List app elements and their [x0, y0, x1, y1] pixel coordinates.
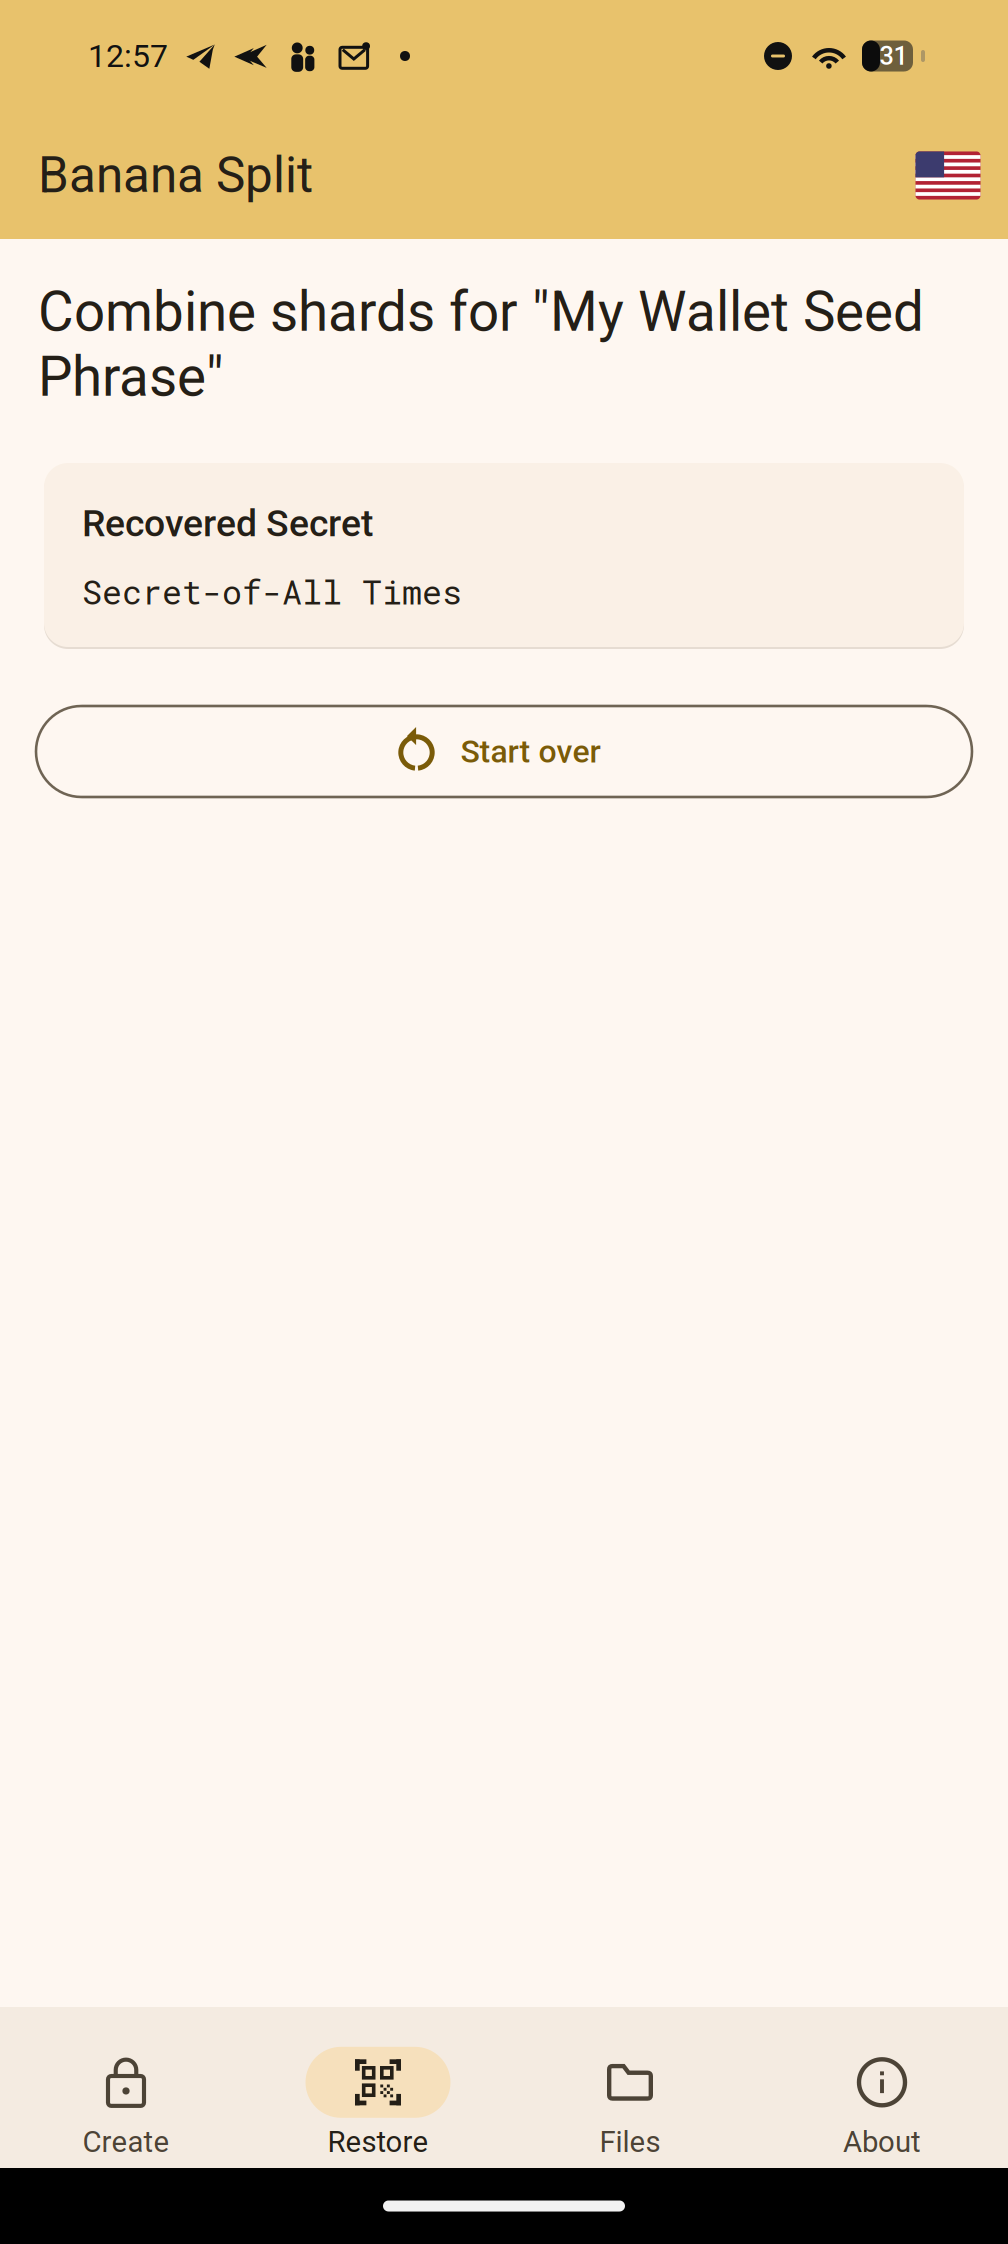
staticText: Restore: [327, 2125, 428, 2159]
staticText: Files: [599, 2125, 660, 2159]
button[interactable]: Create: [0, 2047, 252, 2163]
button[interactable]: Language: [911, 138, 985, 212]
button[interactable]: Restore: [252, 2047, 504, 2163]
staticText: Recovered Secret: [82, 502, 373, 545]
button[interactable]: About: [756, 2047, 1008, 2163]
button[interactable]: Files: [504, 2047, 756, 2163]
staticText: Create: [82, 2125, 169, 2159]
staticText: Combine shards for "My Wallet Seed: [38, 280, 924, 344]
button[interactable]: Start over: [36, 706, 972, 797]
staticText: About: [843, 2125, 921, 2159]
staticText: 12:57: [88, 37, 168, 75]
staticText: Start over: [460, 733, 600, 770]
staticText: Phrase": [38, 345, 224, 409]
staticText: 31: [879, 41, 907, 71]
staticText: Secret-of-All Times: [82, 569, 462, 613]
staticText: Banana Split: [38, 147, 313, 204]
